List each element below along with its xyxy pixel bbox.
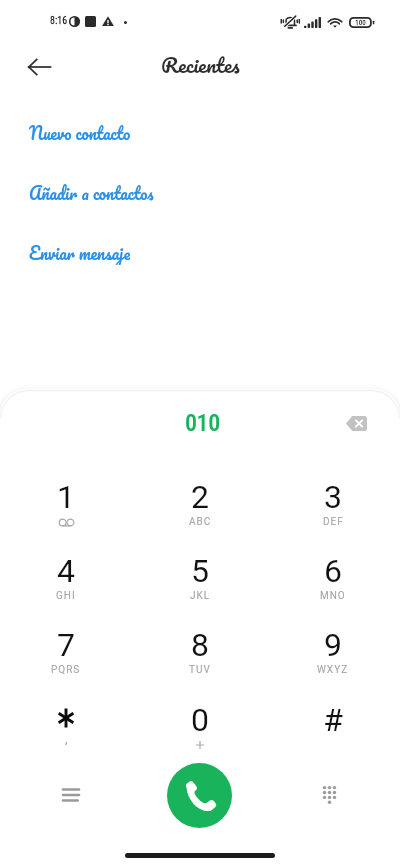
staticText: MNO — [320, 590, 346, 602]
button[interactable]: Dialpad — [310, 776, 348, 814]
staticText: ABC — [189, 516, 212, 528]
staticText: 5 — [191, 552, 209, 590]
button[interactable]: 4 — [7, 550, 125, 620]
button[interactable]: 7 — [7, 624, 125, 694]
button[interactable]: 9 — [274, 624, 392, 694]
staticText: 8 — [191, 626, 209, 664]
staticText: 4 — [57, 552, 75, 590]
staticText: 1 — [57, 478, 75, 516]
staticText: Recientes — [161, 47, 240, 82]
staticText: 010 — [185, 409, 220, 437]
button[interactable]: Back — [20, 48, 58, 86]
button[interactable]: 2 — [141, 476, 259, 546]
button[interactable]: Menu — [51, 776, 89, 814]
staticText: 2 — [191, 478, 209, 516]
staticText: , — [65, 731, 68, 746]
button[interactable]: 6 — [274, 550, 392, 620]
button[interactable]: Nuevo contacto — [0, 119, 400, 145]
staticText: Nuevo contacto — [29, 119, 130, 145]
button[interactable]: 3 — [274, 476, 392, 546]
staticText: 7 — [57, 626, 75, 664]
button[interactable]: Backspace — [338, 405, 374, 441]
staticText: 100 — [355, 19, 366, 27]
staticText: JKL — [190, 590, 211, 602]
staticText: Enviar mensaje — [29, 239, 130, 265]
staticText: TUV — [189, 664, 211, 676]
staticText: 8:16 — [50, 15, 68, 27]
staticText: # — [323, 701, 343, 739]
staticText: WXYZ — [317, 664, 349, 676]
button[interactable]: Enviar mensaje — [0, 239, 400, 265]
staticText: 9 — [324, 626, 342, 664]
staticText: PQRS — [51, 664, 81, 676]
button[interactable]: Añadir a contactos — [0, 179, 400, 205]
button[interactable]: , — [7, 699, 125, 769]
staticText: 3 — [324, 478, 342, 516]
button[interactable]: 8 — [141, 624, 259, 694]
button[interactable]: 5 — [141, 550, 259, 620]
staticText: GHI — [56, 590, 76, 602]
staticText: 0 — [191, 701, 209, 739]
button[interactable]: # — [274, 699, 392, 769]
button[interactable]: Call — [167, 763, 232, 828]
staticText: 6 — [324, 552, 342, 590]
staticText: Añadir a contactos — [29, 179, 154, 205]
button[interactable]: 1 — [7, 476, 125, 546]
staticText: DEF — [323, 516, 344, 528]
button[interactable]: 0 — [141, 699, 259, 769]
